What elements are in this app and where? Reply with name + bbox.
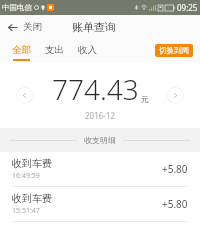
- staticText: 15:51:47: [12, 206, 40, 216]
- staticText: 中国电信: [2, 3, 32, 12]
- button[interactable]: Previous month: [16, 87, 33, 104]
- button[interactable]: 收到车费: [0, 152, 200, 186]
- staticText: +5.80: [162, 197, 188, 211]
- staticText: +5.80: [162, 162, 188, 176]
- staticText: 09:25: [177, 2, 198, 13]
- staticText: 16:49:59: [12, 171, 40, 181]
- staticText: 收入: [78, 44, 97, 56]
- staticText: 2016-12: [85, 110, 116, 121]
- button[interactable]: 收到车费: [0, 187, 200, 221]
- button[interactable]: 全部: [5, 39, 38, 62]
- button[interactable]: Next month: [167, 87, 184, 104]
- staticText: 切换到周: [159, 46, 189, 55]
- button[interactable]: 收入: [71, 39, 104, 62]
- staticText: 全部: [12, 44, 31, 56]
- staticText: 关闭: [23, 21, 42, 33]
- staticText: 元: [141, 94, 149, 104]
- staticText: 774.43: [52, 70, 139, 108]
- button[interactable]: 关闭: [0, 15, 48, 39]
- button[interactable]: 支出: [38, 39, 71, 62]
- staticText: 支出: [45, 44, 64, 56]
- staticText: 收到车费: [12, 192, 52, 205]
- button[interactable]: 切换到周: [155, 44, 193, 57]
- staticText: 账单查询: [72, 20, 116, 34]
- staticText: 收到车费: [12, 157, 52, 170]
- staticText: 收支明细: [84, 135, 116, 145]
